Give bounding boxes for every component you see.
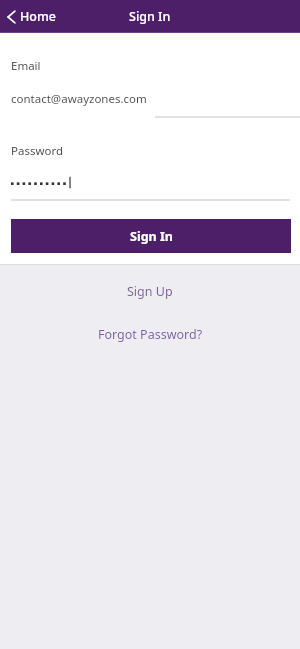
staticText: Sign In — [129, 8, 171, 25]
staticText: Home — [20, 8, 57, 25]
button[interactable]: contact@awayzones.com — [11, 91, 147, 107]
button[interactable] — [11, 175, 63, 189]
staticText: Sign Up — [127, 283, 173, 300]
staticText: Sign In — [130, 228, 173, 245]
staticText: Password — [11, 143, 64, 159]
staticText: Email — [11, 58, 41, 74]
button[interactable]: Back to Home — [0, 4, 67, 29]
button[interactable]: Forgot Password? — [82, 322, 219, 347]
staticText: Forgot Password? — [98, 326, 203, 343]
button[interactable]: Sign In — [11, 219, 291, 253]
button[interactable]: Sign Up — [111, 279, 189, 304]
